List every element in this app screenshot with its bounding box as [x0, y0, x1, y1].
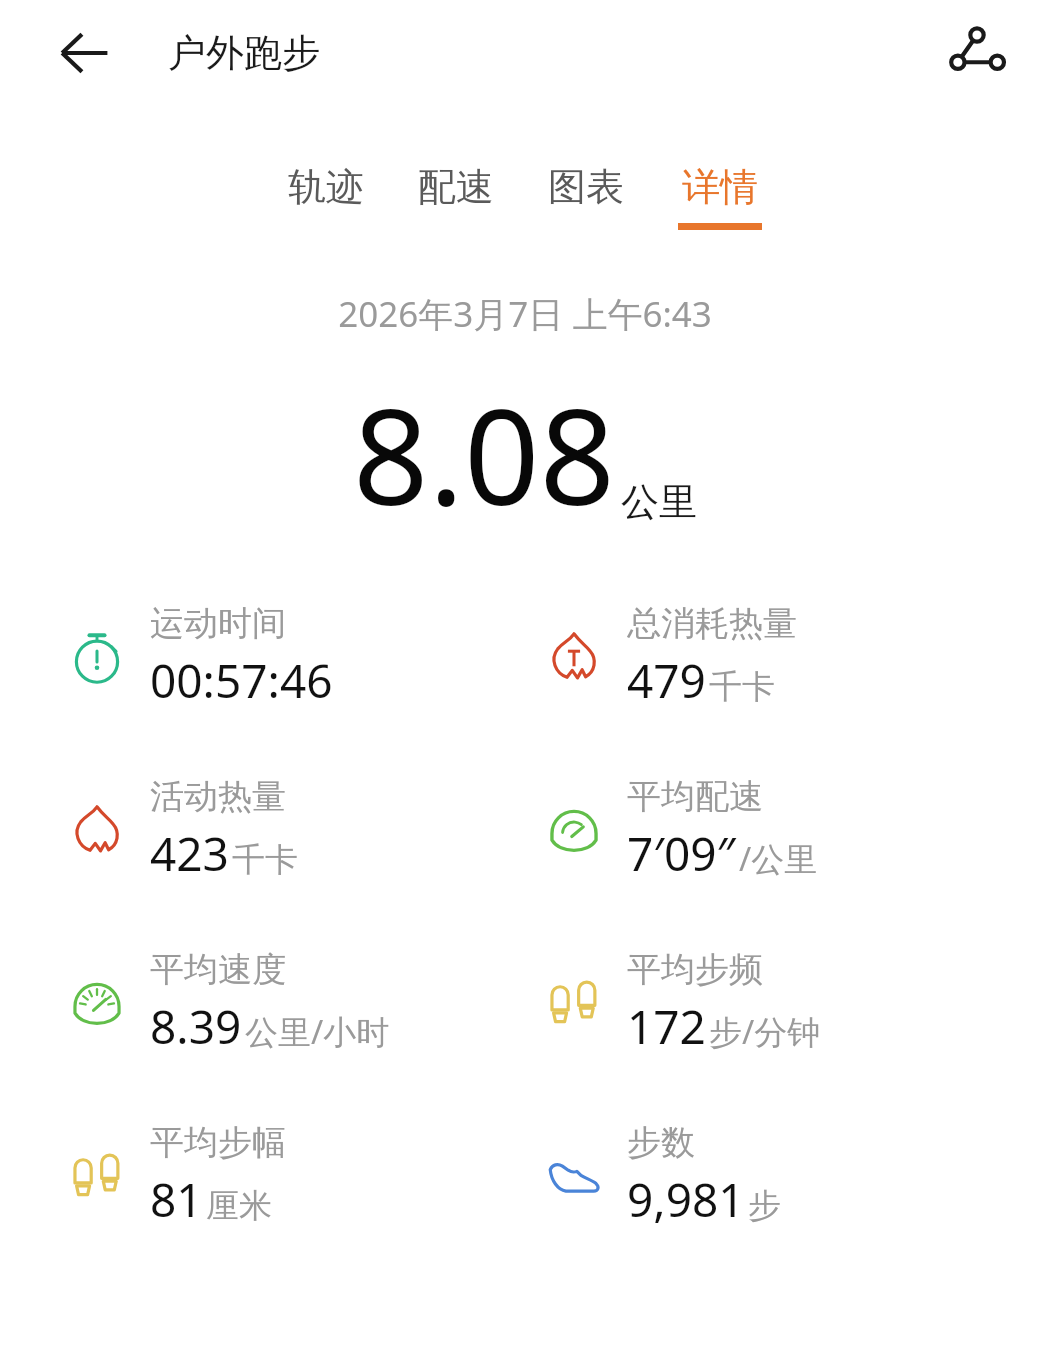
button[interactable]: 轨迹 [278, 163, 374, 230]
button[interactable]: 详情 [668, 163, 772, 230]
staticText: 479 [627, 649, 706, 712]
staticText: 厘米 [206, 1185, 272, 1227]
staticText: 千卡 [709, 666, 775, 708]
button[interactable]: 图表 [538, 163, 634, 230]
button[interactable]: 平均步频 [525, 948, 1050, 1058]
button[interactable]: 平均步幅 [0, 1121, 525, 1231]
staticText: 总消耗热量 [627, 602, 797, 645]
staticText: 户外跑步 [168, 29, 320, 77]
staticText: 活动热量 [150, 775, 286, 818]
staticText: 步/分钟 [709, 1009, 821, 1054]
staticText: 千卡 [232, 839, 298, 881]
staticText: 配速 [418, 163, 494, 211]
staticText: 9,981 [627, 1168, 745, 1231]
staticText: 运动时间 [150, 602, 286, 645]
staticText: 公里/小时 [245, 1009, 390, 1054]
staticText: 详情 [682, 163, 758, 211]
button[interactable]: 活动热量 [0, 775, 525, 885]
staticText: /公里 [739, 836, 818, 881]
staticText: 2026年3月7日 上午6:43 [0, 290, 1050, 338]
staticText: 平均步幅 [150, 1121, 286, 1164]
button[interactable]: 平均速度 [0, 948, 525, 1058]
staticText: 步数 [627, 1121, 695, 1164]
staticText: 8.08 [353, 364, 615, 544]
staticText: 步 [748, 1185, 781, 1227]
staticText: 平均速度 [150, 948, 286, 991]
staticText: 平均步频 [627, 948, 763, 991]
button[interactable]: 总消耗热量 [525, 602, 1050, 712]
staticText: 7′09″ [627, 822, 736, 885]
button[interactable]: 平均配速 [525, 775, 1050, 885]
button[interactable]: Back [48, 17, 120, 89]
staticText: 轨迹 [288, 163, 364, 211]
button[interactable]: 配速 [408, 163, 504, 230]
staticText: 平均配速 [627, 775, 763, 818]
button[interactable]: 步数 [525, 1121, 1050, 1231]
staticText: 公里 [621, 478, 697, 526]
staticText: 图表 [548, 163, 624, 211]
button[interactable]: Share [938, 14, 1016, 92]
staticText: 172 [627, 995, 706, 1058]
staticText: 8.39 [150, 995, 242, 1058]
staticText: 00:57:46 [150, 649, 333, 712]
staticText: 423 [150, 822, 229, 885]
staticText: 81 [150, 1168, 203, 1231]
button[interactable]: 运动时间 [0, 602, 525, 712]
